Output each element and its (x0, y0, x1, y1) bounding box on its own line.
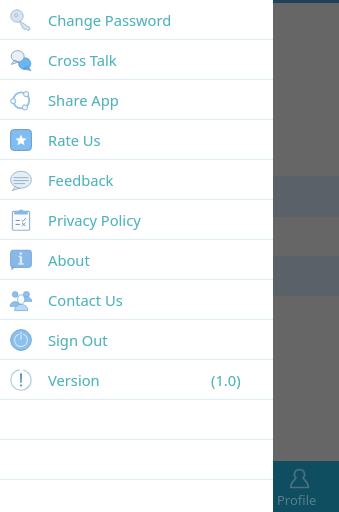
button[interactable]: Sign Out (0, 320, 273, 359)
staticText: (1.0) (211, 370, 241, 390)
button[interactable]: Feedback (0, 160, 273, 199)
staticText: Privacy Policy (48, 210, 141, 230)
button[interactable]: Profile (273, 461, 339, 512)
button[interactable]: About (0, 240, 273, 279)
staticText: Profile (277, 491, 317, 509)
staticText: Version (48, 370, 100, 390)
button[interactable]: Cross Talk (0, 40, 273, 79)
staticText: Contact Us (48, 290, 123, 310)
button[interactable]: Change Password (0, 0, 273, 39)
staticText: Share App (48, 90, 119, 110)
staticText: Cross Talk (48, 50, 117, 70)
staticText: Sign Out (48, 330, 108, 350)
staticText: About (48, 250, 90, 270)
button[interactable]: Contact Us (0, 280, 273, 319)
staticText: Feedback (48, 170, 114, 190)
button[interactable]: Share App (0, 80, 273, 119)
button[interactable]: Rate Us (0, 120, 273, 159)
staticText: Change Password (48, 10, 172, 30)
button[interactable]: Version (0, 360, 273, 399)
button[interactable]: Privacy Policy (0, 200, 273, 239)
staticText: Rate Us (48, 130, 101, 150)
